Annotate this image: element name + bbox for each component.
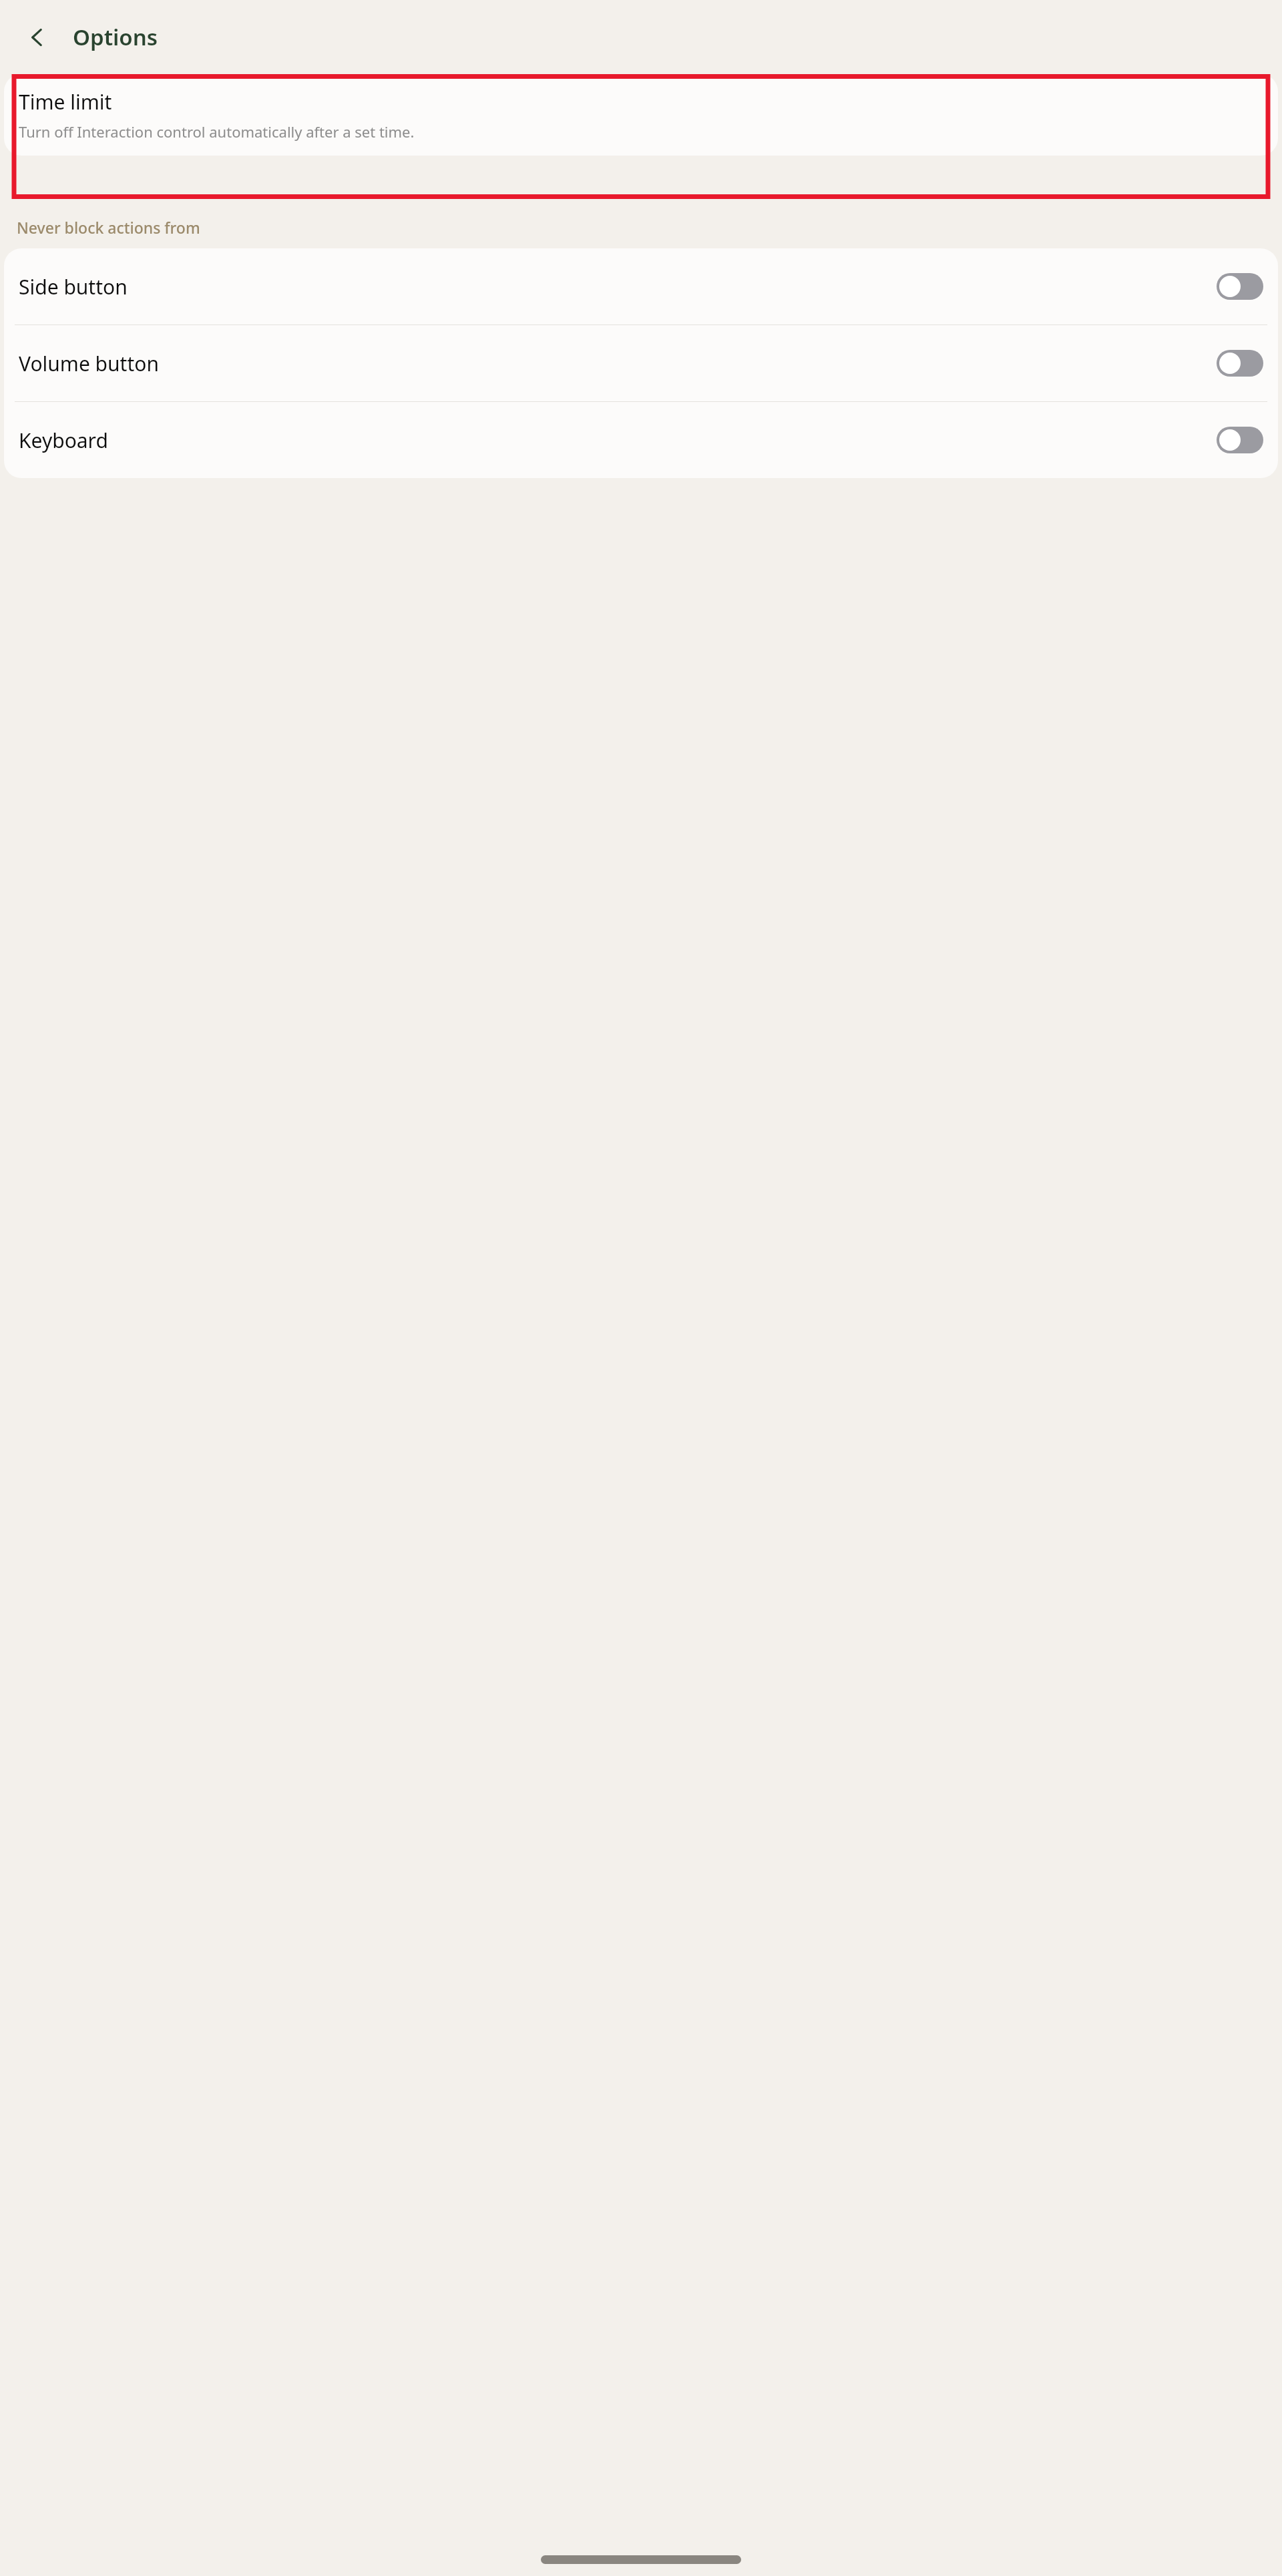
button[interactable]: Toggle off	[1217, 273, 1263, 300]
button[interactable]: Toggle off	[1217, 350, 1263, 377]
staticText: Side button	[19, 273, 128, 300]
button[interactable]: Volume button	[4, 325, 1278, 401]
button[interactable]: Toggle off	[1217, 427, 1263, 453]
staticText: Keyboard	[19, 427, 108, 454]
staticText: Never block actions from	[17, 217, 200, 238]
button[interactable]: Keyboard	[4, 402, 1278, 478]
staticText: Volume button	[19, 350, 159, 377]
button[interactable]: Back	[20, 19, 56, 55]
button[interactable]: Time limit	[4, 74, 1278, 156]
staticText: Time limit	[19, 88, 112, 116]
button[interactable]: Side button	[4, 248, 1278, 325]
staticText: Turn off Interaction control automatical…	[19, 122, 415, 142]
staticText: Options	[73, 22, 158, 52]
